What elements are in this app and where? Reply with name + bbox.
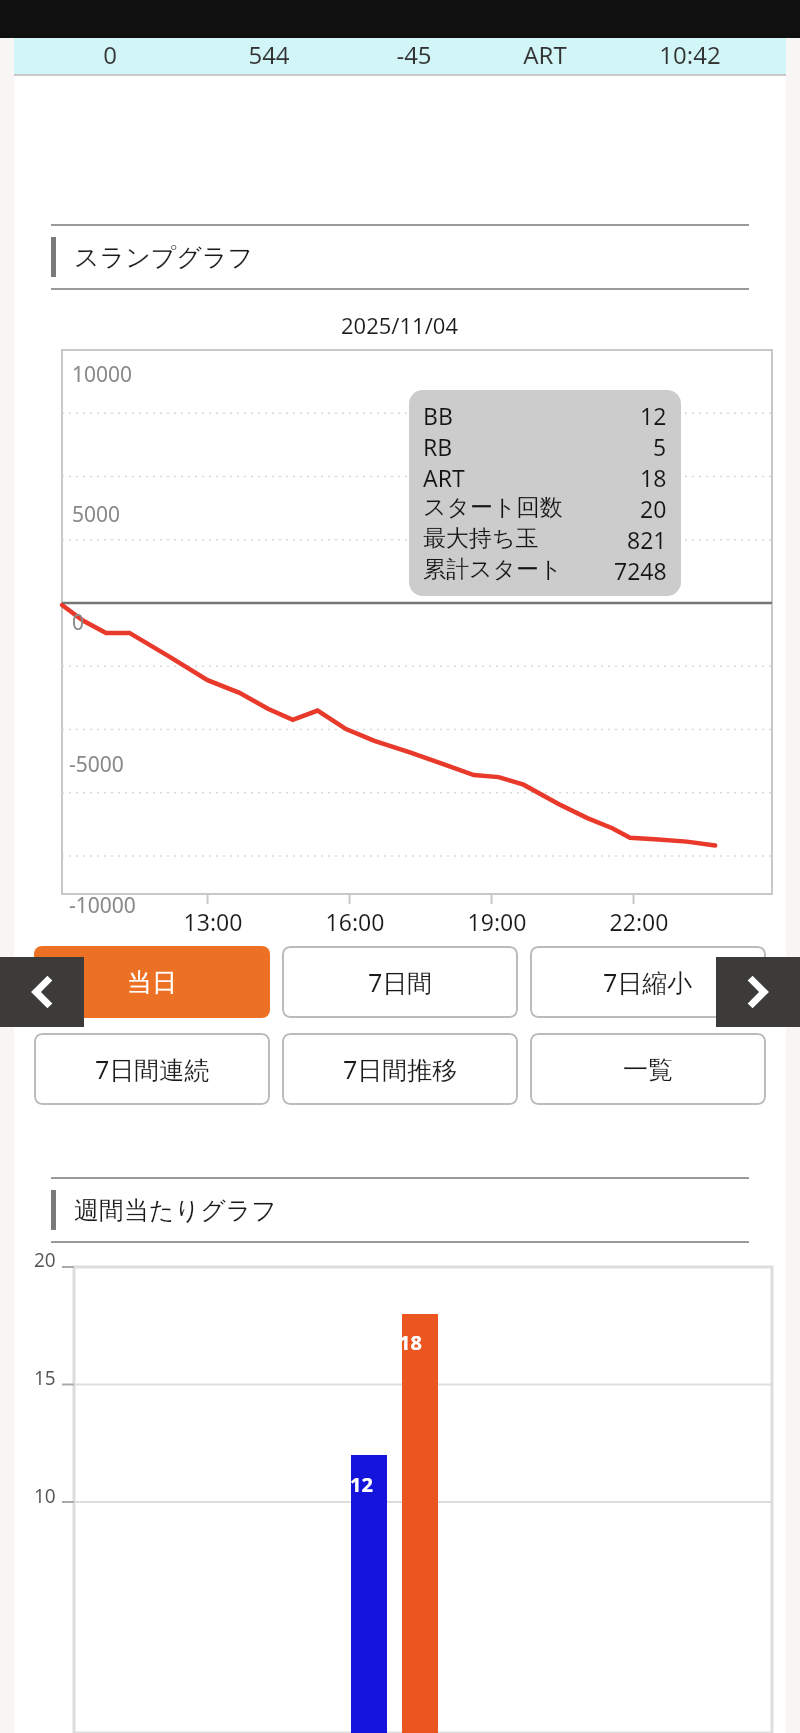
- button[interactable]: 一覧: [530, 1033, 766, 1105]
- staticText: 10: [34, 1483, 56, 1509]
- staticText: 15: [34, 1365, 56, 1391]
- staticText: 一覧: [623, 1054, 673, 1085]
- staticText: 7日間推移: [343, 1052, 458, 1086]
- staticText: 最大持ち玉: [423, 524, 539, 553]
- staticText: 12: [640, 400, 667, 431]
- staticText: 5: [653, 431, 667, 462]
- staticText: ART: [423, 462, 465, 493]
- staticText: 10000: [72, 360, 133, 389]
- staticText: 7日間: [368, 965, 433, 999]
- staticText: 20: [34, 1247, 56, 1273]
- button[interactable]: 7日間: [282, 946, 518, 1018]
- staticText: 12: [350, 1471, 373, 1498]
- staticText: 10:42: [614, 38, 766, 71]
- button[interactable]: 7日縮小: [530, 946, 766, 1018]
- staticText: 544: [186, 38, 352, 71]
- staticText: 18: [399, 1329, 422, 1356]
- button[interactable]: Next: [716, 957, 800, 1027]
- staticText: 7日縮小: [603, 965, 693, 999]
- button[interactable]: 当日: [34, 946, 270, 1018]
- staticText: 22:00: [568, 906, 710, 937]
- button[interactable]: 7日間推移: [282, 1033, 518, 1105]
- staticText: 19:00: [426, 906, 568, 937]
- staticText: 週間当たりグラフ: [74, 1195, 277, 1226]
- staticText: 0: [34, 38, 186, 71]
- staticText: BB: [423, 400, 453, 431]
- staticText: 累計スタート: [423, 555, 563, 584]
- staticText: -10000: [69, 891, 136, 920]
- staticText: 当日: [127, 967, 177, 998]
- staticText: 7248: [614, 555, 667, 586]
- staticText: 2025/11/04: [341, 310, 459, 334]
- staticText: 13:00: [142, 906, 284, 937]
- staticText: 821: [627, 524, 667, 555]
- staticText: 20: [640, 493, 667, 524]
- staticText: スランプグラフ: [74, 242, 254, 273]
- staticText: 0: [72, 608, 85, 637]
- staticText: 7日間連続: [95, 1052, 210, 1086]
- staticText: 5000: [72, 500, 121, 529]
- staticText: -45: [352, 38, 476, 71]
- button[interactable]: Previous: [0, 957, 84, 1027]
- staticText: -5000: [69, 750, 124, 779]
- staticText: RB: [423, 431, 453, 462]
- button[interactable]: 7日間連続: [34, 1033, 270, 1105]
- staticText: 16:00: [284, 906, 426, 937]
- staticText: スタート回数: [423, 493, 563, 522]
- staticText: ART: [476, 38, 614, 71]
- staticText: 18: [640, 462, 667, 493]
